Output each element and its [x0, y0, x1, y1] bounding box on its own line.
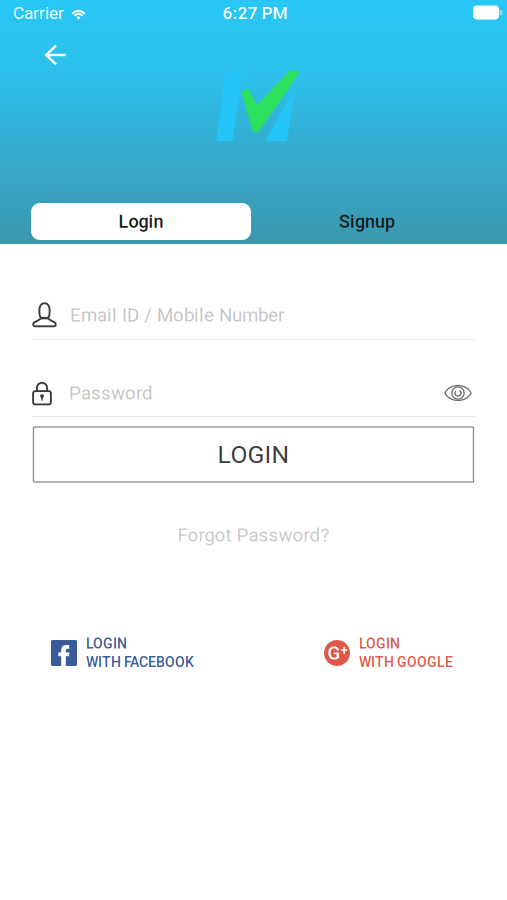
button[interactable]: G	[324, 636, 453, 670]
staticText: Carrier	[13, 3, 64, 23]
staticText: 6:27 PM	[222, 3, 287, 23]
staticText: Email ID / Mobile Number	[70, 304, 284, 326]
staticText: +	[340, 642, 347, 658]
staticText: LOGIN	[359, 636, 400, 652]
button[interactable]: Signup	[267, 203, 467, 240]
button[interactable]: Login	[31, 203, 251, 240]
staticText: Login	[118, 211, 163, 232]
staticText: LOGIN	[217, 440, 289, 469]
staticText: Password	[69, 382, 153, 404]
staticText: WITH GOOGLE	[359, 654, 453, 670]
staticText: G	[327, 642, 340, 664]
button[interactable]: Back	[33, 34, 79, 76]
staticText: Forgot Password?	[177, 524, 329, 546]
staticText: WITH FACEBOOK	[86, 654, 194, 670]
button[interactable]: LOGIN	[33, 427, 473, 482]
button[interactable]: Show password	[441, 377, 475, 409]
button[interactable]: Forgot Password?	[177, 520, 329, 550]
staticText: Signup	[339, 211, 395, 232]
button[interactable]: LOGIN	[51, 636, 194, 670]
staticText: LOGIN	[86, 636, 127, 652]
